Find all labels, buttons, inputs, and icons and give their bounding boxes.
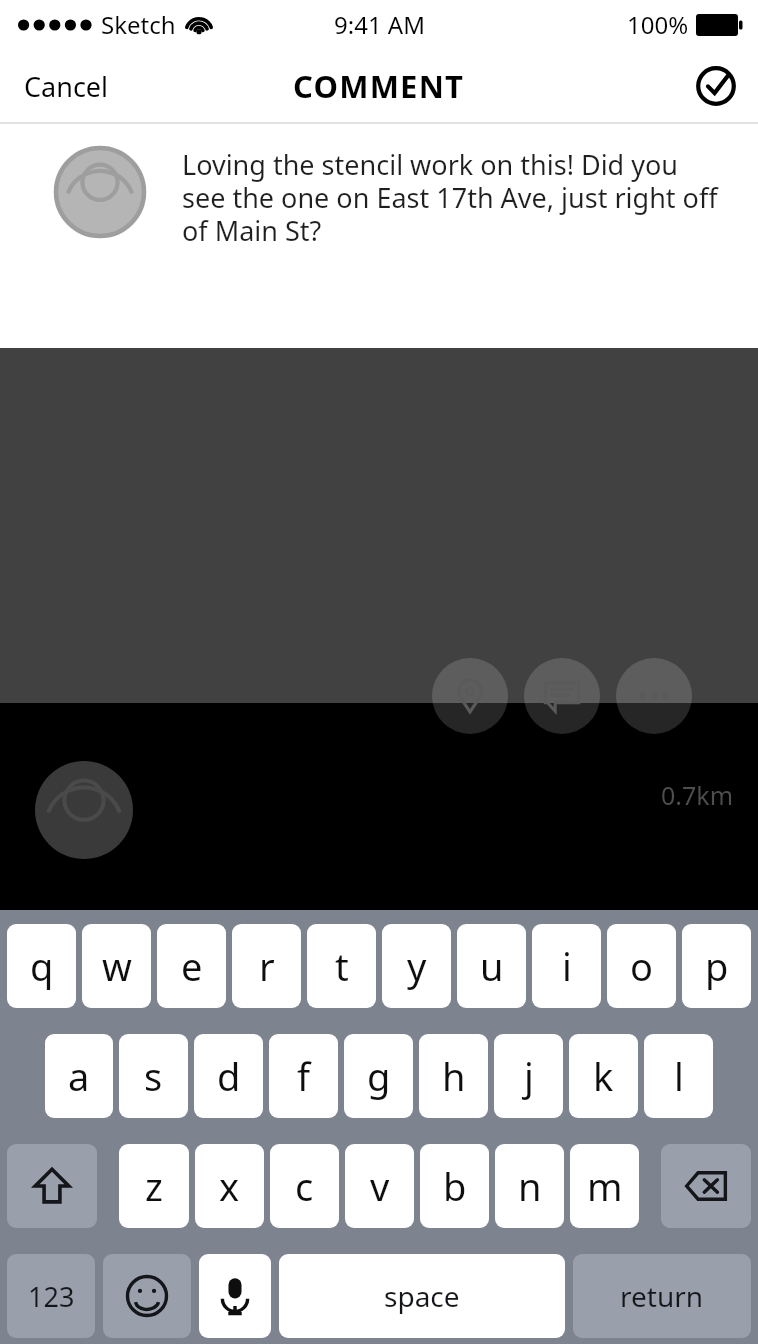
staticText: n bbox=[518, 1160, 542, 1212]
staticText: space bbox=[384, 1277, 460, 1315]
button[interactable]: t bbox=[307, 924, 376, 1008]
button[interactable]: s bbox=[119, 1034, 188, 1118]
staticText: 100% bbox=[627, 8, 689, 41]
staticText: r bbox=[259, 940, 275, 992]
staticText: h bbox=[442, 1050, 466, 1102]
button[interactable]: Cancel bbox=[6, 58, 127, 115]
staticText: k bbox=[593, 1050, 614, 1102]
button[interactable]: p bbox=[682, 924, 751, 1008]
staticText: v bbox=[370, 1160, 390, 1212]
button[interactable]: k bbox=[569, 1034, 638, 1118]
button[interactable]: Profile bbox=[34, 760, 134, 860]
button[interactable]: y bbox=[382, 924, 451, 1008]
button[interactable]: q bbox=[7, 924, 76, 1008]
button[interactable]: c bbox=[270, 1144, 339, 1228]
staticText: Sketch bbox=[101, 8, 176, 41]
staticText: return bbox=[620, 1277, 704, 1315]
button[interactable]: j bbox=[494, 1034, 563, 1118]
staticText: 9:41 AM bbox=[334, 8, 425, 41]
button[interactable]: e bbox=[157, 924, 226, 1008]
button[interactable]: a bbox=[45, 1034, 113, 1118]
staticText: o bbox=[630, 940, 653, 992]
button[interactable]: l bbox=[644, 1034, 713, 1118]
button[interactable]: g bbox=[344, 1034, 413, 1118]
button[interactable]: n bbox=[495, 1144, 564, 1228]
button[interactable]: z bbox=[119, 1144, 189, 1228]
staticText: y bbox=[407, 940, 427, 992]
staticText: u bbox=[480, 940, 504, 992]
button[interactable]: 123 bbox=[7, 1254, 95, 1338]
button[interactable]: r bbox=[232, 924, 301, 1008]
staticText: i bbox=[562, 940, 572, 992]
button[interactable]: d bbox=[194, 1034, 263, 1118]
button[interactable]: x bbox=[195, 1144, 264, 1228]
staticText: c bbox=[295, 1160, 314, 1212]
staticText: Cancel bbox=[24, 68, 109, 105]
staticText: p bbox=[705, 940, 729, 992]
staticText: s bbox=[144, 1050, 163, 1102]
staticText: m bbox=[587, 1160, 623, 1212]
button[interactable]: More options bbox=[616, 658, 692, 734]
button[interactable]: space bbox=[279, 1254, 565, 1338]
button[interactable]: Submit comment bbox=[688, 58, 744, 114]
button[interactable]: m bbox=[570, 1144, 639, 1228]
button[interactable]: i bbox=[532, 924, 601, 1008]
staticText: j bbox=[524, 1050, 534, 1102]
staticText: t bbox=[335, 940, 349, 992]
staticText: b bbox=[443, 1160, 467, 1212]
button[interactable]: v bbox=[345, 1144, 414, 1228]
staticText: x bbox=[219, 1160, 240, 1212]
staticText: w bbox=[102, 940, 132, 992]
button[interactable]: h bbox=[419, 1034, 488, 1118]
button[interactable]: Comments bbox=[524, 658, 600, 734]
staticText: l bbox=[674, 1050, 684, 1102]
staticText: a bbox=[68, 1050, 90, 1102]
button[interactable]: Emoji bbox=[103, 1254, 191, 1338]
button[interactable]: u bbox=[457, 924, 526, 1008]
staticText: z bbox=[145, 1160, 163, 1212]
staticText: Loving the stencil work on this! Did you… bbox=[182, 146, 722, 249]
staticText: COMMENT bbox=[293, 65, 465, 107]
staticText: g bbox=[367, 1050, 391, 1102]
button[interactable]: w bbox=[82, 924, 151, 1008]
button[interactable]: Dictate bbox=[199, 1254, 271, 1338]
staticText: e bbox=[181, 940, 203, 992]
button[interactable]: Backspace bbox=[661, 1144, 751, 1228]
staticText: 0.7km bbox=[661, 778, 734, 812]
staticText: q bbox=[30, 940, 54, 992]
button[interactable]: Shift bbox=[7, 1144, 97, 1228]
button[interactable]: Location bbox=[432, 658, 508, 734]
button[interactable]: o bbox=[607, 924, 676, 1008]
staticText: d bbox=[217, 1050, 241, 1102]
button[interactable]: f bbox=[269, 1034, 338, 1118]
staticText: f bbox=[297, 1050, 311, 1102]
button[interactable]: return bbox=[573, 1254, 751, 1338]
staticText: 123 bbox=[28, 1278, 75, 1315]
button[interactable]: b bbox=[420, 1144, 489, 1228]
